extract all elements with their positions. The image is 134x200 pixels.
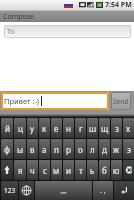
- button[interactable]: х: [123, 118, 134, 138]
- staticText: щ: [101, 123, 109, 134]
- button[interactable]: п: [51, 139, 62, 159]
- button[interactable]: Compose: [0, 9, 134, 22]
- staticText: л: [90, 144, 95, 155]
- button[interactable]: Привет :-): [1, 92, 109, 110]
- staticText: б: [102, 165, 107, 176]
- button[interactable]: м: [51, 160, 62, 180]
- button[interactable]: а: [39, 139, 50, 159]
- button[interactable]: б: [99, 160, 110, 180]
- button[interactable]: о: [75, 139, 86, 159]
- staticText: и: [66, 165, 71, 176]
- staticText: т: [79, 165, 83, 176]
- button[interactable]: с: [39, 160, 50, 180]
- staticText: . ,: [100, 186, 106, 196]
- staticText: ц: [18, 123, 23, 134]
- staticText: к: [42, 123, 47, 134]
- button[interactable]: ш: [87, 118, 98, 138]
- staticText: Compose: [3, 12, 35, 22]
- staticText: 123: [4, 186, 16, 195]
- button[interactable]: г: [75, 118, 86, 138]
- staticText: я: [18, 165, 23, 176]
- staticText: р: [66, 144, 71, 155]
- button[interactable]: ц: [14, 118, 26, 138]
- button[interactable]: э: [123, 139, 134, 159]
- button[interactable]: ж: [111, 139, 122, 159]
- button[interactable]: т: [75, 160, 86, 180]
- staticText: ю: [113, 165, 120, 176]
- button[interactable]: щ: [99, 118, 110, 138]
- staticText: х: [126, 123, 131, 134]
- staticText: ь: [90, 165, 95, 176]
- button[interactable]: ы: [14, 139, 26, 159]
- button[interactable]: л: [87, 139, 98, 159]
- button[interactable]: ю: [111, 160, 122, 180]
- button[interactable]: й: [1, 118, 13, 138]
- button[interactable]: Backspace: [123, 160, 134, 180]
- staticText: Send: [113, 97, 129, 106]
- button[interactable]: д: [99, 139, 110, 159]
- button[interactable]: To: [4, 25, 131, 38]
- button[interactable]: Space: [35, 181, 92, 200]
- staticText: ч: [30, 165, 35, 176]
- staticText: ж: [113, 144, 120, 155]
- staticText: в: [30, 144, 35, 155]
- staticText: ф: [4, 144, 10, 155]
- button[interactable]: ч: [27, 160, 38, 180]
- staticText: п: [54, 144, 59, 155]
- button[interactable]: н: [63, 118, 74, 138]
- staticText: о: [78, 144, 83, 155]
- button[interactable]: . ,: [93, 181, 113, 200]
- button[interactable]: у: [27, 118, 38, 138]
- staticText: э: [127, 144, 131, 155]
- staticText: м: [53, 165, 60, 176]
- staticText: 7:54 PM: [105, 0, 132, 9]
- button[interactable]: к: [39, 118, 50, 138]
- button[interactable]: р: [63, 139, 74, 159]
- button[interactable]: Send: [111, 92, 131, 110]
- staticText: ш: [89, 123, 97, 134]
- staticText: у: [30, 123, 35, 134]
- button[interactable]: е: [51, 118, 62, 138]
- button[interactable]: Shift: [1, 160, 13, 180]
- button[interactable]: в: [27, 139, 38, 159]
- staticText: з: [115, 123, 119, 134]
- staticText: To: [7, 27, 15, 37]
- staticText: а: [42, 144, 47, 155]
- staticText: с: [43, 165, 47, 176]
- button[interactable]: ф: [1, 139, 13, 159]
- button[interactable]: Return: [114, 181, 134, 200]
- staticText: ы: [17, 144, 24, 155]
- button[interactable]: Change language: [19, 181, 34, 200]
- staticText: Привет :-): [4, 96, 40, 106]
- staticText: д: [102, 144, 107, 155]
- button[interactable]: 123: [1, 181, 18, 200]
- staticText: г: [79, 123, 83, 134]
- staticText: е: [54, 123, 59, 134]
- staticText: й: [5, 123, 10, 134]
- button[interactable]: з: [111, 118, 122, 138]
- staticText: н: [66, 123, 71, 134]
- button[interactable]: и: [63, 160, 74, 180]
- button[interactable]: ь: [87, 160, 98, 180]
- button[interactable]: я: [14, 160, 26, 180]
